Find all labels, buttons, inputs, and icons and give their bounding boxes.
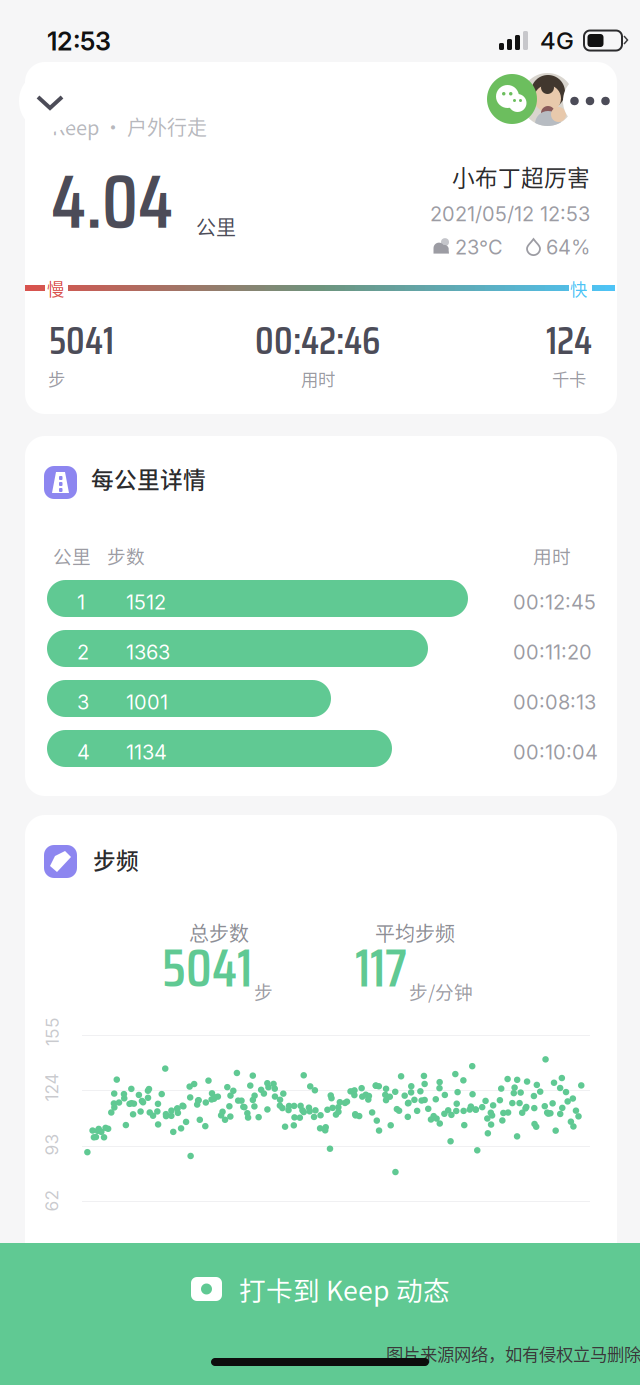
staticText: 1001 — [126, 690, 168, 714]
staticText: 图片来源网络，如有侵权立马删除 — [386, 1341, 640, 1366]
staticText: 2021/05/12 12:53 — [430, 202, 590, 226]
staticText: 5041 — [49, 310, 114, 371]
staticText: 步 — [48, 366, 65, 391]
staticText: 用时 — [301, 366, 335, 391]
staticText: 23°C — [455, 235, 503, 259]
button[interactable]: Share to WeChat — [487, 74, 537, 124]
staticText: 93 — [41, 1134, 63, 1155]
staticText: 用时 — [533, 542, 571, 569]
staticText: 12:53 — [47, 26, 111, 57]
staticText: 小布丁超厉害 — [452, 160, 590, 193]
button[interactable]: Profile photo — [521, 73, 574, 126]
staticText: Keep · 户外行走 — [52, 112, 207, 141]
staticText: 00:08:13 — [513, 690, 596, 714]
staticText: 千卡 — [552, 366, 586, 391]
staticText: 124 — [38, 1077, 66, 1098]
staticText: 步频 — [93, 843, 139, 876]
staticText: 00:12:45 — [513, 590, 596, 614]
staticText: 2 — [77, 640, 89, 664]
staticText: 62 — [41, 1190, 63, 1211]
staticText: 平均步频 — [375, 918, 455, 947]
staticText: 1134 — [126, 740, 167, 764]
staticText: 步 — [254, 978, 273, 1005]
staticText: 1 — [77, 590, 85, 614]
staticText: 公里 — [196, 212, 236, 241]
staticText: 4.04 — [51, 143, 173, 260]
staticText: 00:42:46 — [255, 310, 380, 371]
staticText: 3 — [77, 690, 89, 714]
staticText: 每公里详情 — [91, 462, 206, 495]
staticText: 公里 — [53, 542, 91, 569]
staticText: 打卡到 Keep 动态 — [239, 1270, 450, 1308]
staticText: 步数 — [107, 542, 145, 569]
staticText: 4 — [77, 740, 90, 764]
staticText: 慢 — [47, 276, 64, 301]
staticText: 5041 — [162, 926, 252, 1010]
button[interactable]: Collapse — [19, 70, 81, 132]
staticText: 1512 — [126, 590, 166, 614]
staticText: 117 — [355, 926, 407, 1010]
button[interactable]: More options — [563, 74, 617, 128]
staticText: 64% — [546, 235, 590, 259]
staticText: 步/分钟 — [409, 978, 473, 1005]
button[interactable]: 打卡到 Keep 动态 — [0, 1243, 640, 1335]
staticText: 快 — [570, 276, 587, 301]
staticText: 00:11:20 — [513, 640, 592, 664]
staticText: 00:10:04 — [513, 740, 598, 764]
staticText: 1363 — [126, 640, 170, 664]
staticText: 4G — [540, 26, 574, 55]
staticText: 155 — [38, 1021, 67, 1042]
staticText: 总步数 — [189, 918, 249, 947]
staticText: 124 — [546, 310, 592, 371]
